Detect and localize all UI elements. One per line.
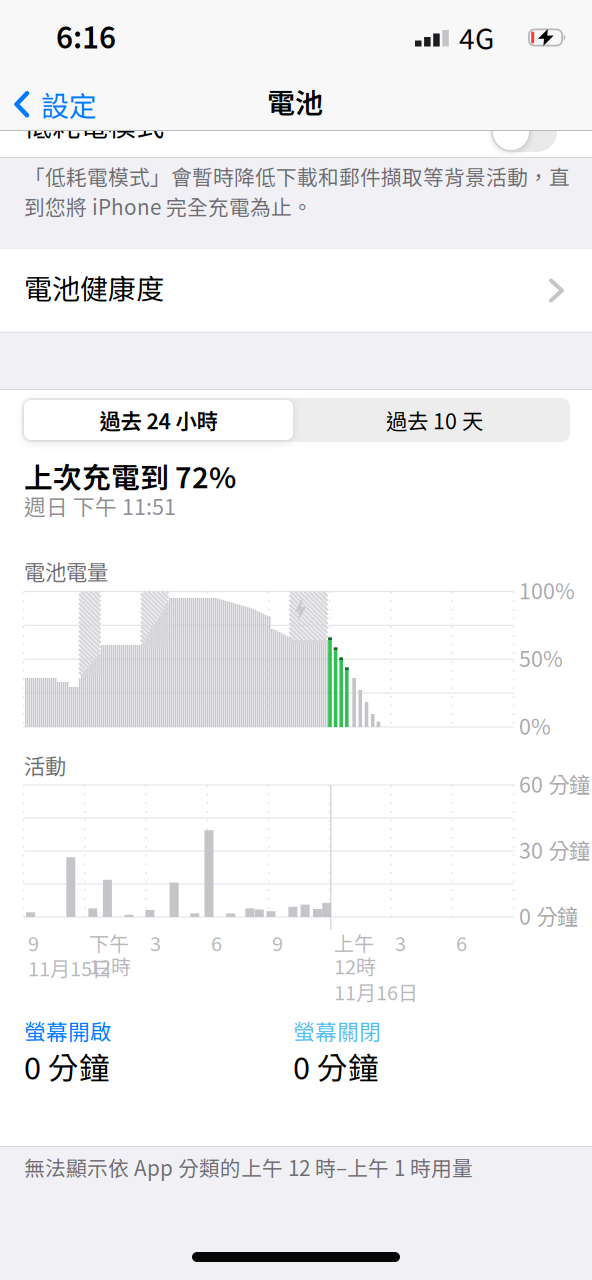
staticText: 30 分鐘 xyxy=(519,834,590,865)
staticText: 電池健康度 xyxy=(24,267,164,307)
staticText: 6 xyxy=(456,928,467,957)
staticText: 0% xyxy=(519,710,551,741)
staticText: 無法顯示依 App 分類的上午 12 時–上午 1 時用量 xyxy=(24,1152,473,1182)
staticText: 上次充電到 72% xyxy=(24,455,236,496)
staticText: 12時 xyxy=(89,951,131,980)
staticText: 6:16 xyxy=(56,14,116,57)
staticText: 螢幕開啟 xyxy=(24,1015,112,1046)
staticText: 「低耗電模式」會暫時降低下載和郵件擷取等背景活動，直 到您將 iPhone 完全… xyxy=(24,161,570,221)
staticText: 電池 xyxy=(267,81,323,121)
staticText: 11月16日 xyxy=(334,977,418,1006)
staticText: 設定 xyxy=(41,84,97,124)
staticText: 上午 xyxy=(334,928,374,957)
staticText: 100% xyxy=(519,574,575,605)
button[interactable]: 低耗電模式 xyxy=(491,112,557,152)
staticText: 11月15日 xyxy=(28,953,112,982)
staticText: 過去 24 小時 xyxy=(99,405,217,435)
staticText: 低耗電模式 xyxy=(24,104,164,144)
staticText: 12時 xyxy=(334,951,376,980)
staticText: 週日 下午 11:51 xyxy=(24,490,176,521)
staticText: 4G xyxy=(459,17,494,57)
staticText: 9 xyxy=(272,928,283,957)
staticText: 活動 xyxy=(24,749,66,780)
staticText: 9 xyxy=(28,928,39,957)
staticText: 0 分鐘 xyxy=(293,1044,379,1088)
staticText: 50% xyxy=(519,642,563,673)
staticText: 3 xyxy=(150,928,161,957)
button[interactable]: 設定 xyxy=(14,84,97,124)
staticText: 下午 xyxy=(89,928,129,957)
staticText: 0 分鐘 xyxy=(24,1044,110,1088)
staticText: 0 分鐘 xyxy=(519,900,578,931)
staticText: 電池電量 xyxy=(24,555,108,586)
staticText: 3 xyxy=(395,928,406,957)
staticText: 60 分鐘 xyxy=(519,768,590,799)
staticText: 過去 10 天 xyxy=(386,405,483,435)
staticText: 螢幕關閉 xyxy=(293,1015,381,1046)
staticText: 6 xyxy=(211,928,222,957)
button[interactable]: 電池健康度 xyxy=(0,248,592,331)
button[interactable]: 過去 10 天 xyxy=(307,402,562,438)
button[interactable]: 過去 24 小時 xyxy=(24,400,293,440)
